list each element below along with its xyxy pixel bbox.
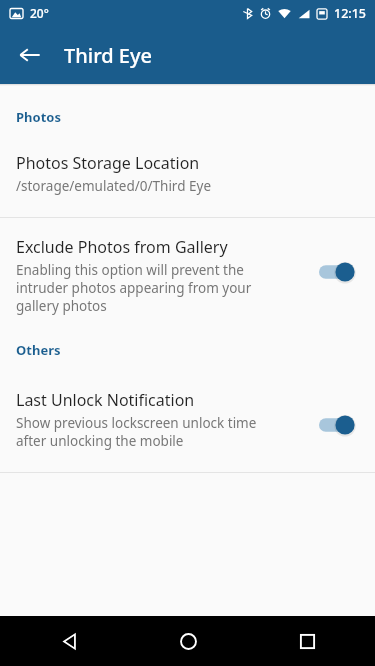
button[interactable]: Back [10,35,50,75]
staticText: Enabling this option will prevent the in… [16,261,252,315]
button[interactable]: Exclude Photos from Gallery [0,236,375,315]
staticText: Last Unlock Notification [16,389,195,411]
button[interactable]: Recent apps [283,617,331,665]
button[interactable]: Toggle Last Unlock Notification [319,413,359,437]
staticText: 20° [30,5,49,21]
staticText: /storage/emulated/0/Third Eye [16,177,211,195]
button[interactable]: Home [164,617,212,665]
button[interactable]: Toggle Exclude Photos from Gallery [319,260,359,284]
button[interactable]: Back [45,617,93,665]
button[interactable]: Last Unlock Notification [0,389,375,450]
staticText: Photos [16,108,61,126]
staticText: Third Eye [64,42,153,69]
staticText: Exclude Photos from Gallery [16,236,228,258]
button[interactable]: Photos Storage Location [0,152,375,195]
staticText: 12:15 [334,5,367,22]
staticText: Show previous lockscreen unlock time aft… [16,414,257,450]
staticText: Photos Storage Location [16,152,200,174]
staticText: Others [16,341,61,359]
